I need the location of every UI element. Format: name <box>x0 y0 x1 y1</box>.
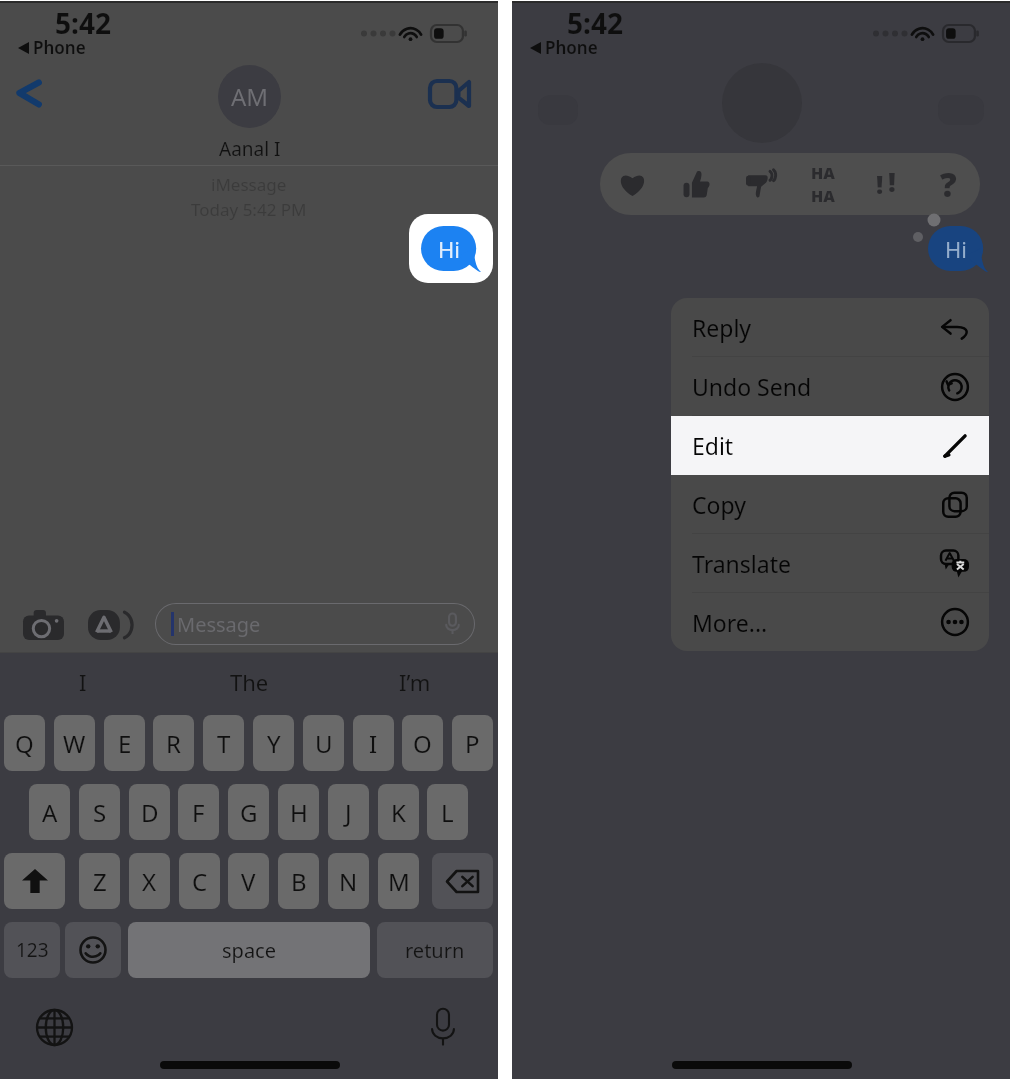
button[interactable]: q <box>917 153 980 215</box>
button[interactable]: I’m <box>332 653 498 711</box>
button[interactable]: C <box>179 853 220 909</box>
staticText: H <box>290 796 308 829</box>
button[interactable]: X <box>129 853 170 909</box>
staticText: return <box>405 937 465 964</box>
staticText: N <box>339 865 358 898</box>
staticText: 5:42 <box>55 4 111 42</box>
staticText: Hi <box>438 234 460 264</box>
button[interactable]: space <box>128 922 370 978</box>
staticText: Hi <box>945 234 967 264</box>
button[interactable]: The <box>166 653 332 711</box>
button[interactable]: Hi <box>409 214 493 283</box>
button[interactable]: down <box>728 153 791 215</box>
staticText: W <box>63 727 86 760</box>
button[interactable]: Emoji keyboard <box>65 922 121 978</box>
button[interactable]: Undo Send <box>671 357 989 416</box>
button[interactable]: heart <box>600 153 664 215</box>
staticText: G <box>240 796 258 829</box>
staticText: X <box>142 865 157 898</box>
button[interactable]: S <box>79 784 120 840</box>
button[interactable]: U <box>303 715 344 771</box>
button[interactable]: Y <box>253 715 294 771</box>
button[interactable]: haha <box>791 153 854 215</box>
button[interactable]: M <box>378 853 419 909</box>
button[interactable]: Z <box>79 853 120 909</box>
staticText: I <box>79 667 87 697</box>
button[interactable]: L <box>427 784 468 840</box>
staticText: D <box>141 796 159 829</box>
button[interactable]: H <box>278 784 319 840</box>
staticText: The <box>230 667 269 697</box>
staticText: F <box>192 796 205 829</box>
staticText: O <box>413 727 432 760</box>
button[interactable]: Translate <box>671 534 989 593</box>
staticText: Message <box>177 611 261 638</box>
button[interactable]: V <box>228 853 269 909</box>
button[interactable]: 123 <box>4 922 60 978</box>
staticText: R <box>166 727 181 760</box>
staticText: S <box>93 796 107 829</box>
staticText: 123 <box>16 937 49 963</box>
staticText: P <box>465 727 480 760</box>
staticText: More... <box>692 607 768 638</box>
button[interactable]: G <box>228 784 269 840</box>
button[interactable]: T <box>203 715 244 771</box>
staticText: Q <box>15 727 34 760</box>
button[interactable]: Edit <box>671 416 989 475</box>
button[interactable]: O <box>402 715 443 771</box>
staticText: V <box>241 865 256 898</box>
button[interactable]: Message text field <box>155 603 475 645</box>
staticText: Aanal I <box>219 136 281 162</box>
button[interactable]: App Store <box>88 610 130 640</box>
staticText: A <box>42 796 58 829</box>
button[interactable]: E <box>104 715 145 771</box>
button[interactable]: Q <box>4 715 45 771</box>
staticText: HA <box>811 185 835 207</box>
button[interactable]: FaceTime video call <box>428 79 472 109</box>
button[interactable]: Reply <box>671 298 989 357</box>
button[interactable]: K <box>378 784 419 840</box>
button[interactable]: Dictate <box>430 1008 456 1047</box>
button[interactable]: More... <box>671 593 989 651</box>
button[interactable]: R <box>153 715 194 771</box>
staticText: iMessage <box>211 173 287 196</box>
staticText: U <box>315 727 333 760</box>
button[interactable]: A <box>29 784 70 840</box>
button[interactable]: Change keyboard <box>35 1008 74 1047</box>
button[interactable]: bang <box>854 153 917 215</box>
staticText: E <box>118 727 132 760</box>
staticText: 5:42 <box>567 4 623 42</box>
staticText: C <box>192 865 208 898</box>
staticText: ! <box>876 167 884 199</box>
button[interactable]: Audio message <box>439 609 465 639</box>
staticText: Y <box>267 727 281 760</box>
button[interactable]: Copy <box>671 475 989 534</box>
staticText: ? <box>940 162 957 207</box>
staticText: L <box>441 796 454 829</box>
button[interactable]: Shift <box>4 853 65 909</box>
button[interactable]: Back <box>8 71 52 115</box>
button[interactable]: I <box>353 715 394 771</box>
button[interactable]: W <box>54 715 95 771</box>
button[interactable]: Backspace <box>432 853 493 909</box>
staticText: J <box>345 796 352 829</box>
button[interactable]: J <box>328 784 369 840</box>
staticText: HA <box>811 162 835 184</box>
staticText: Phone <box>33 36 86 59</box>
staticText: I’m <box>399 667 431 697</box>
staticText: B <box>291 865 307 898</box>
staticText: Edit <box>692 430 734 461</box>
button[interactable]: N <box>328 853 369 909</box>
button[interactable]: Camera <box>23 610 64 640</box>
staticText: AM <box>231 80 269 113</box>
staticText: Z <box>93 865 107 898</box>
button[interactable]: B <box>278 853 319 909</box>
button[interactable]: return <box>377 922 493 978</box>
staticText: Phone <box>545 36 598 59</box>
button[interactable]: up <box>664 153 728 215</box>
button[interactable]: AM <box>218 65 281 162</box>
button[interactable]: D <box>129 784 170 840</box>
button[interactable]: F <box>178 784 219 840</box>
button[interactable]: P <box>452 715 493 771</box>
